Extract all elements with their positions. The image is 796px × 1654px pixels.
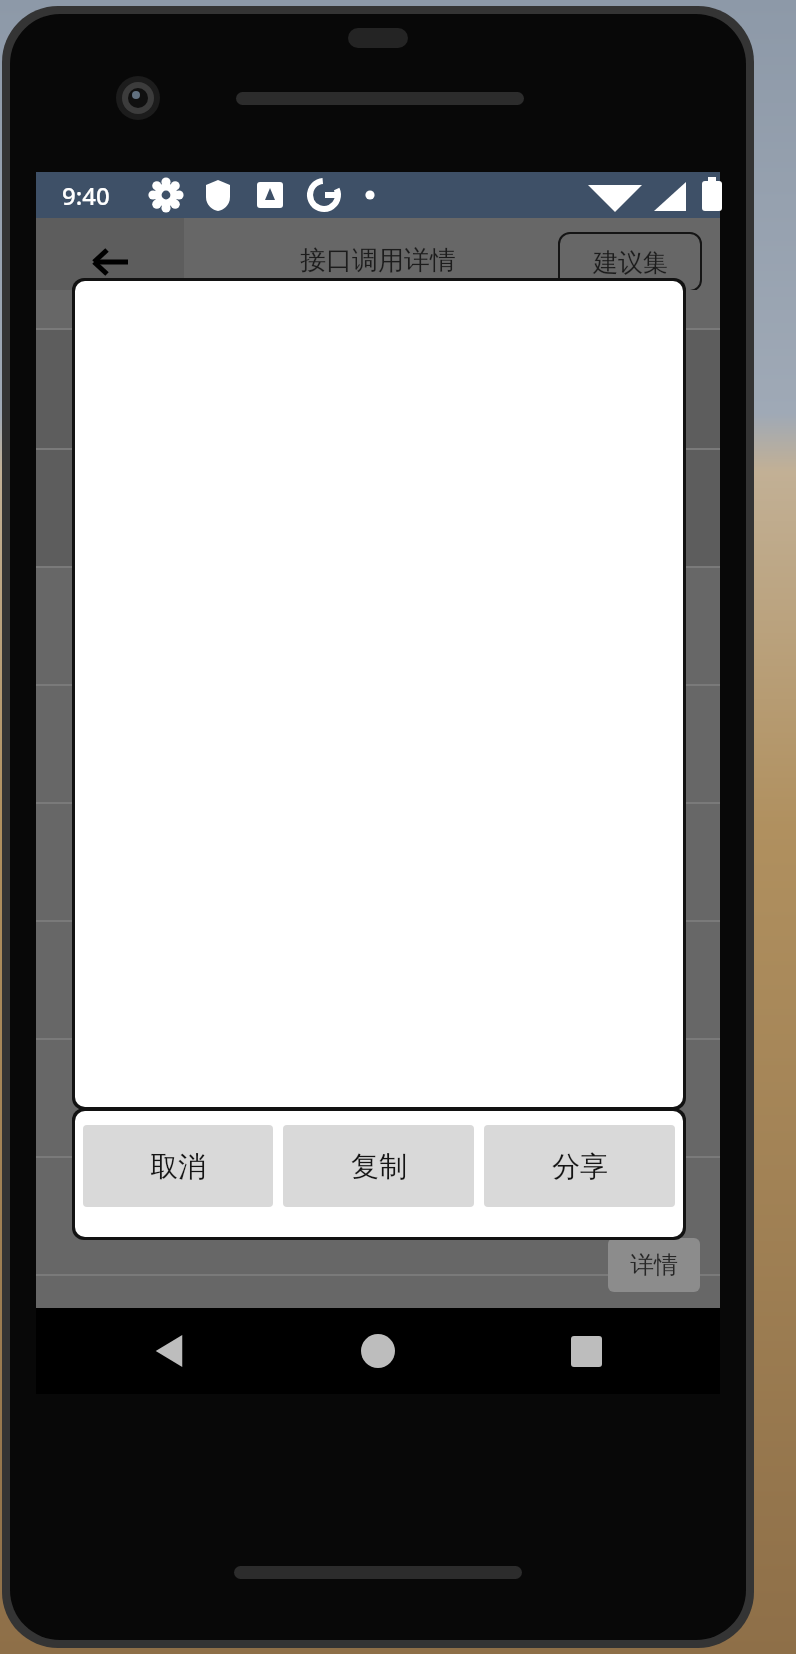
staticText: 分享 <box>552 1149 608 1184</box>
staticText: 复制 <box>351 1149 407 1184</box>
button[interactable]: Recent apps <box>556 1321 616 1381</box>
staticText: 接口调用详情 <box>300 244 456 277</box>
button[interactable]: 分享 <box>484 1125 675 1207</box>
staticText: 建议集 <box>593 247 668 278</box>
staticText: 9:40 <box>62 179 110 212</box>
button[interactable]: 建议集 <box>558 232 702 292</box>
button[interactable]: Home <box>348 1321 408 1381</box>
staticText: 详情 <box>630 1250 678 1280</box>
button[interactable]: 复制 <box>283 1125 474 1207</box>
button[interactable]: Back <box>140 1321 200 1381</box>
button[interactable]: Back <box>36 218 184 290</box>
button[interactable]: 取消 <box>83 1125 273 1207</box>
button[interactable]: 详情 <box>608 1238 700 1292</box>
staticText: 取消 <box>150 1149 206 1184</box>
